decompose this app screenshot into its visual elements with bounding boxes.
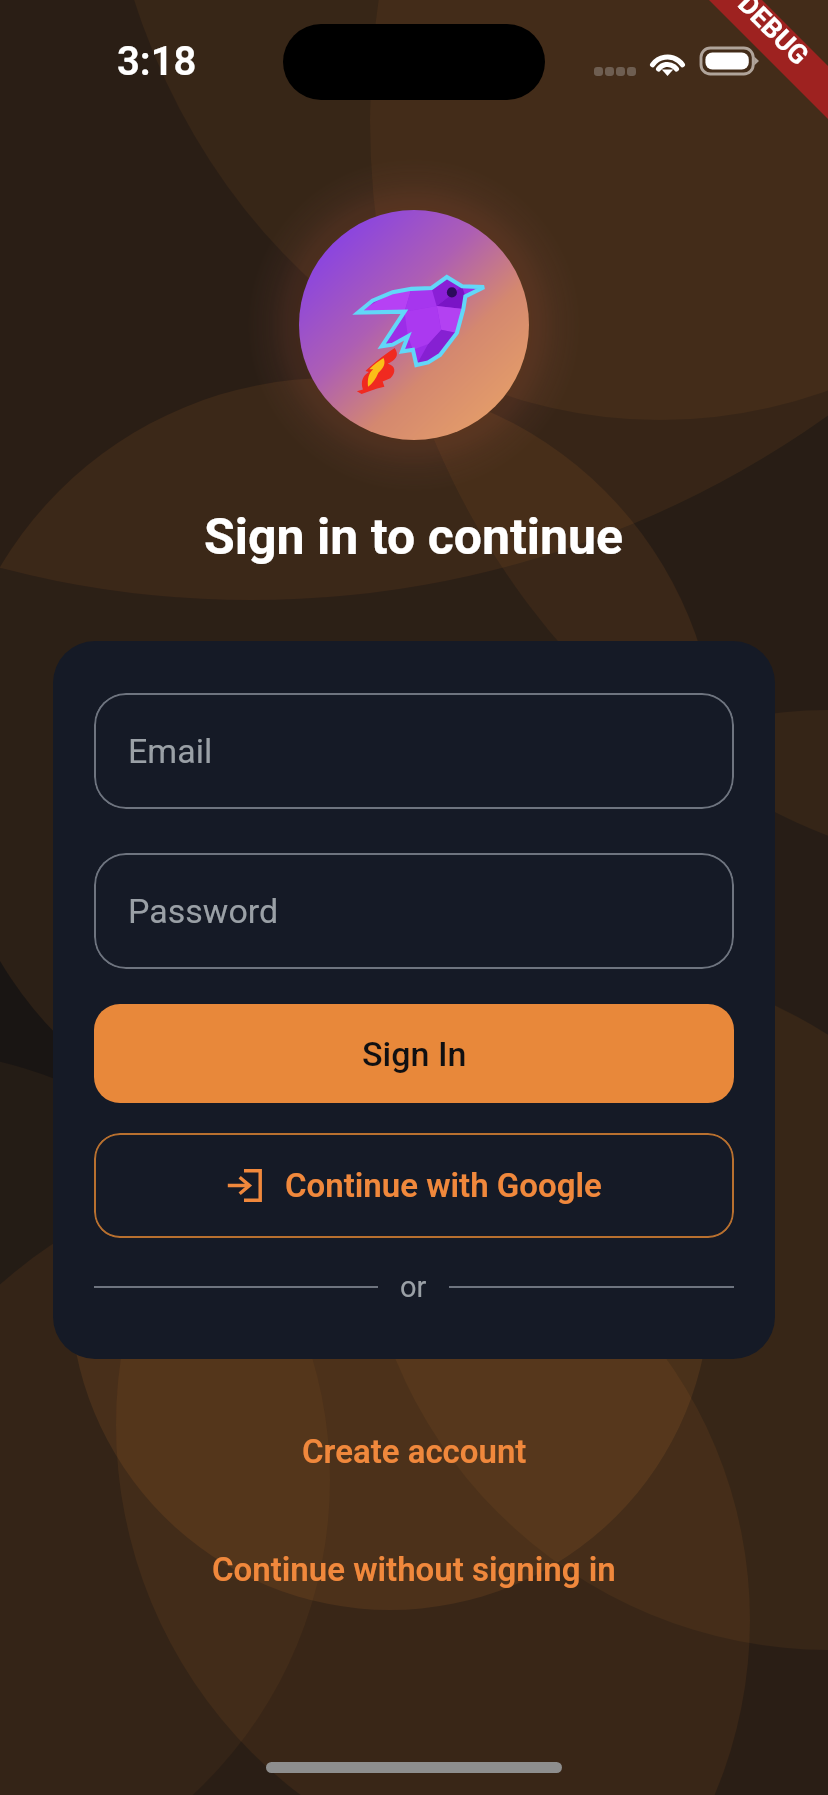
staticText: Continue with Google [285,1166,602,1205]
other: Wi-Fi [649,46,686,75]
staticText: Create account [302,1432,527,1471]
staticText: Sign in to continue [204,508,624,567]
staticText: Continue without signing in [212,1550,616,1589]
other: Login [226,1169,262,1202]
button[interactable]: Password [94,853,734,969]
button[interactable]: Email [94,693,734,809]
button[interactable]: Continue without signing in [194,1542,634,1597]
staticText: Sign In [362,1034,467,1074]
staticText: Password [128,891,279,931]
staticText: Email [128,731,213,771]
staticText: 3:18 [117,38,197,85]
button[interactable]: Sign In [94,1004,734,1103]
button[interactable]: Login [94,1133,734,1238]
staticText: DEBUG [731,0,815,72]
staticText: or [400,1270,427,1304]
button[interactable]: Create account [284,1424,545,1479]
